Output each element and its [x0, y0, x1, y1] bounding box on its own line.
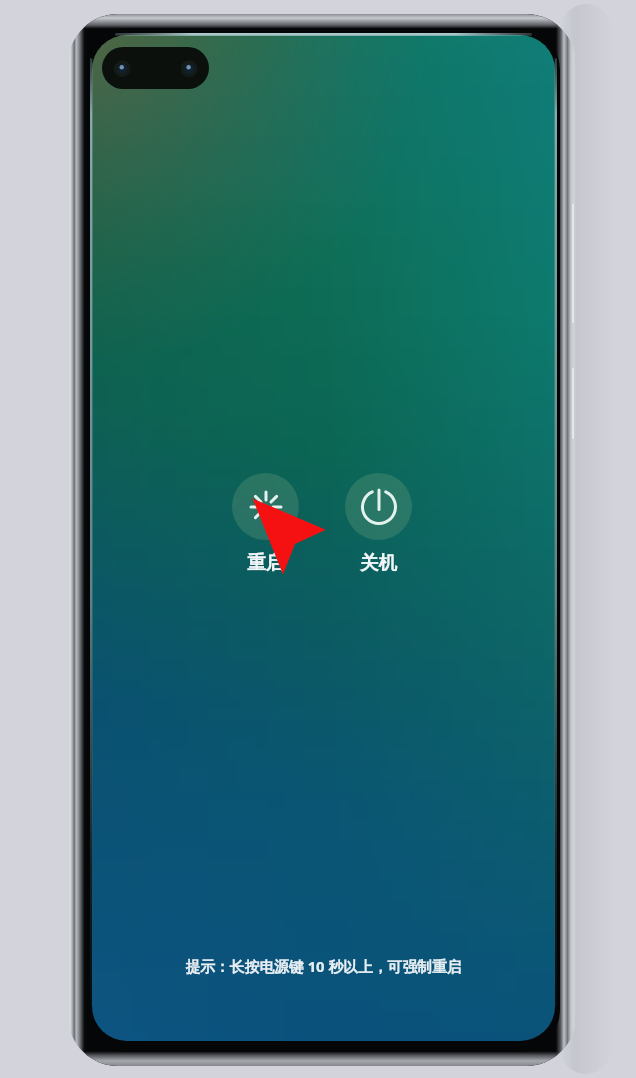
staticText: 提示：长按电源键 10 秒以上，可强制重启	[185, 956, 462, 976]
button[interactable]: Restart	[232, 473, 299, 540]
button[interactable]: Power off	[345, 473, 412, 540]
staticText: 关机	[360, 551, 397, 574]
staticText: 重启	[247, 551, 284, 574]
